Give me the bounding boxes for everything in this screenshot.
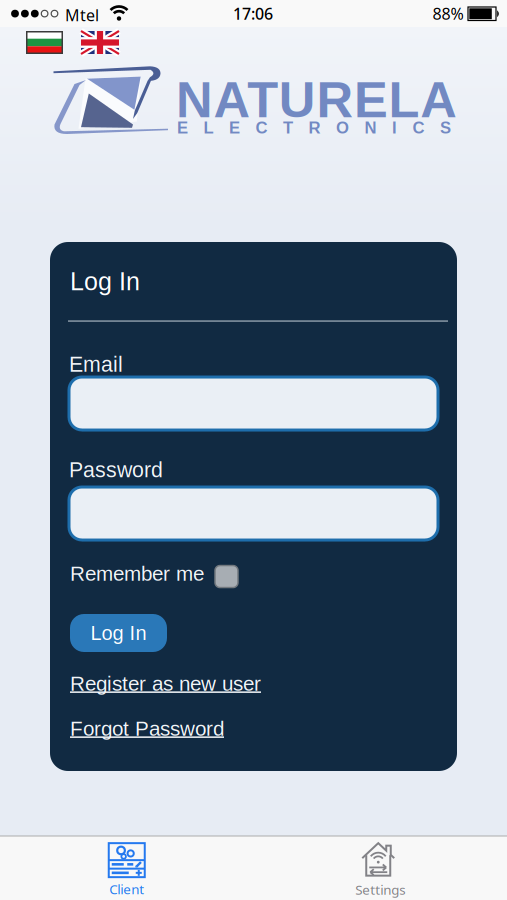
button[interactable]: Forgot Password: [70, 717, 224, 740]
staticText: O: [336, 118, 349, 137]
staticText: Settings: [355, 881, 405, 898]
staticText: 17:06: [233, 3, 273, 24]
staticText: C: [255, 118, 267, 137]
staticText: Password: [69, 458, 163, 482]
staticText: N: [364, 118, 376, 137]
staticText: Remember me: [70, 562, 204, 585]
staticText: Client: [109, 880, 144, 898]
staticText: Mtel: [65, 4, 99, 26]
staticText: Forgot Password: [70, 717, 224, 740]
button[interactable]: Register as new user: [70, 672, 261, 695]
button[interactable]: Client: [67, 841, 187, 899]
button[interactable]: [26, 31, 63, 54]
staticText: I: [392, 118, 397, 137]
staticText: Register as new user: [70, 672, 261, 695]
staticText: Log In: [90, 622, 146, 644]
staticText: S: [440, 118, 451, 137]
button[interactable]: [69, 487, 438, 540]
staticText: R: [308, 118, 320, 137]
button[interactable]: Remember me: [70, 562, 238, 585]
button[interactable]: [69, 377, 438, 430]
button[interactable]: Log In: [70, 614, 167, 652]
staticText: 88%: [432, 3, 463, 24]
staticText: L: [203, 118, 213, 137]
staticText: E: [229, 118, 240, 137]
staticText: Email: [69, 352, 123, 376]
staticText: NATURELA: [176, 71, 457, 128]
staticText: Log In: [70, 267, 140, 295]
button[interactable]: Settings: [320, 841, 440, 899]
staticText: E: [177, 118, 188, 137]
button[interactable]: [81, 31, 119, 54]
staticText: T: [283, 118, 293, 137]
staticText: C: [412, 118, 424, 137]
